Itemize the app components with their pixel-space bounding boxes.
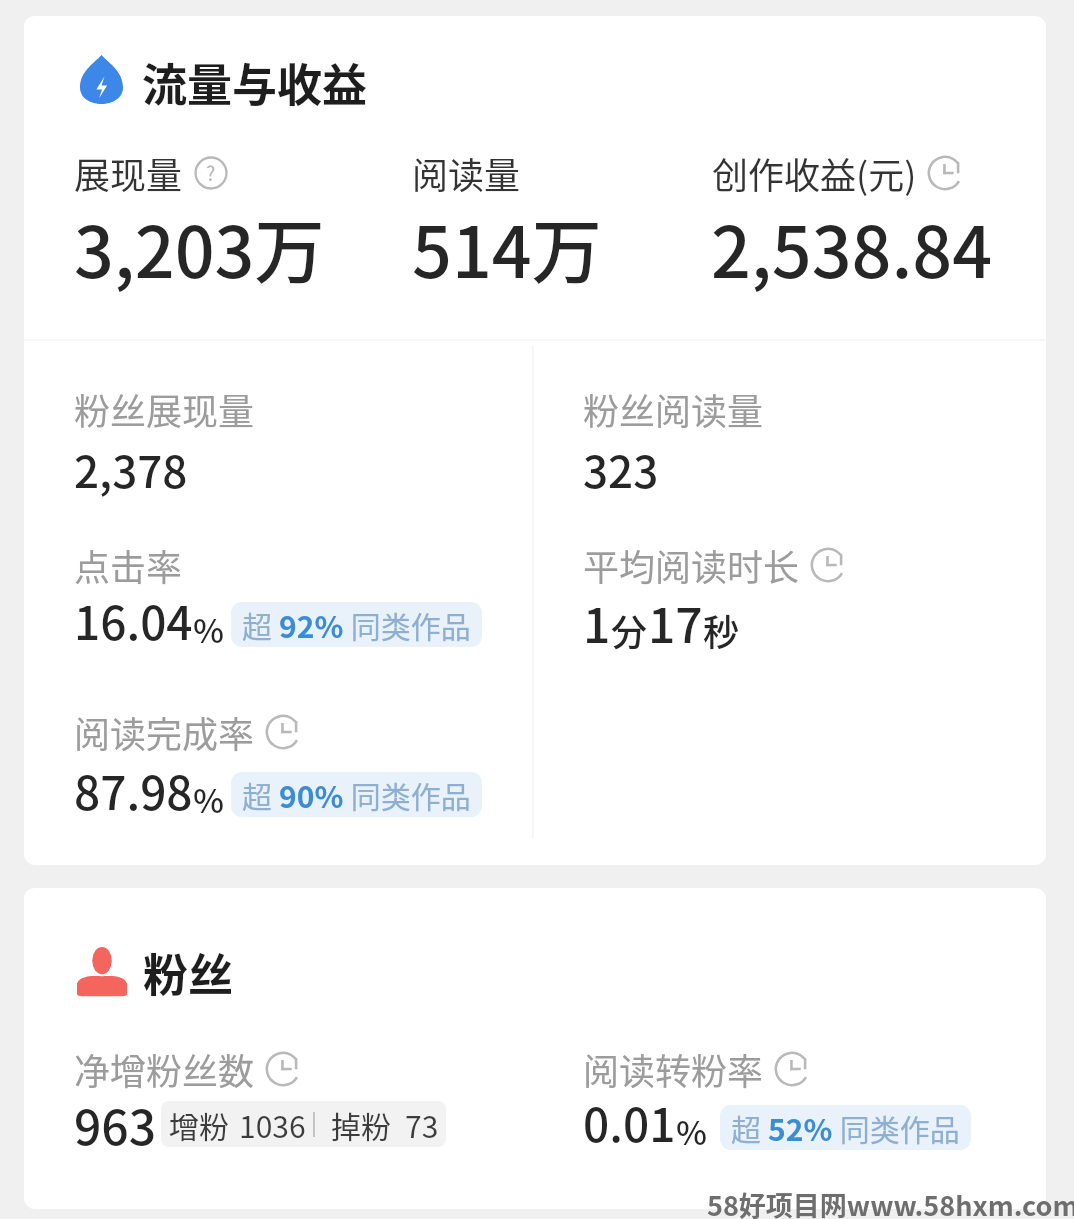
staticText: 323 <box>583 437 659 501</box>
button[interactable]: Data update time <box>927 155 963 191</box>
button[interactable]: 增粉 <box>161 1101 446 1147</box>
staticText: 净增粉丝数 <box>74 1043 255 1095</box>
staticText: 创作收益(元) <box>712 147 917 199</box>
staticText: % <box>193 605 224 653</box>
staticText: 52% <box>768 1106 833 1149</box>
staticText: 粉丝展现量 <box>74 383 255 435</box>
staticText: 87.98 <box>74 757 193 824</box>
staticText: 3,203万 <box>74 197 325 298</box>
button[interactable]: 粉丝 <box>77 939 234 1004</box>
staticText: 73 <box>405 1103 439 1146</box>
staticText: 同类作品 <box>833 1106 960 1149</box>
button[interactable]: 超 <box>231 772 482 817</box>
staticText: 17 <box>648 587 703 657</box>
staticText: 58好项目网www.58hxm.com <box>707 1185 1074 1219</box>
staticText: 掉粉 <box>331 1103 391 1146</box>
button[interactable]: 超 <box>231 602 482 647</box>
staticText: 90% <box>279 773 344 816</box>
staticText: 超 <box>242 603 279 646</box>
staticText: 分 <box>611 604 648 656</box>
staticText: 同类作品 <box>344 603 471 646</box>
button[interactable]: Data update time <box>265 714 301 750</box>
staticText: 阅读转粉率 <box>583 1043 764 1095</box>
staticText: 粉丝阅读量 <box>583 383 764 435</box>
staticText: 展现量 <box>74 147 183 199</box>
staticText: 0.01 <box>583 1089 676 1156</box>
staticText: 16.04 <box>74 587 193 654</box>
staticText: 增粉 <box>169 1103 229 1146</box>
staticText: 同类作品 <box>344 773 471 816</box>
staticText: 1036 <box>239 1103 306 1146</box>
staticText: 粉丝 <box>143 940 234 1005</box>
staticText: 92% <box>279 603 344 646</box>
button[interactable]: Data update time <box>810 547 846 583</box>
staticText: ? <box>206 158 216 187</box>
staticText: 2,378 <box>74 437 188 501</box>
staticText: 1 <box>583 587 611 657</box>
staticText: 阅读量 <box>412 147 521 199</box>
staticText: % <box>193 775 224 823</box>
staticText: 点击率 <box>74 539 183 591</box>
staticText: 2,538.84 <box>711 197 993 298</box>
button[interactable]: Help <box>194 156 228 190</box>
button[interactable]: Data update time <box>774 1051 810 1087</box>
staticText: 514万 <box>412 197 602 298</box>
staticText: 阅读完成率 <box>74 706 255 758</box>
staticText: 超 <box>242 773 279 816</box>
staticText: 秒 <box>703 604 740 656</box>
staticText: % <box>676 1107 707 1155</box>
staticText: 963 <box>74 1089 157 1159</box>
staticText: 流量与收益 <box>142 50 368 115</box>
button[interactable]: Data update time <box>265 1051 301 1087</box>
button[interactable]: 超 <box>720 1105 971 1150</box>
staticText: 超 <box>731 1106 768 1149</box>
button[interactable]: 流量与收益 <box>80 49 368 114</box>
staticText: 平均阅读时长 <box>583 539 800 591</box>
